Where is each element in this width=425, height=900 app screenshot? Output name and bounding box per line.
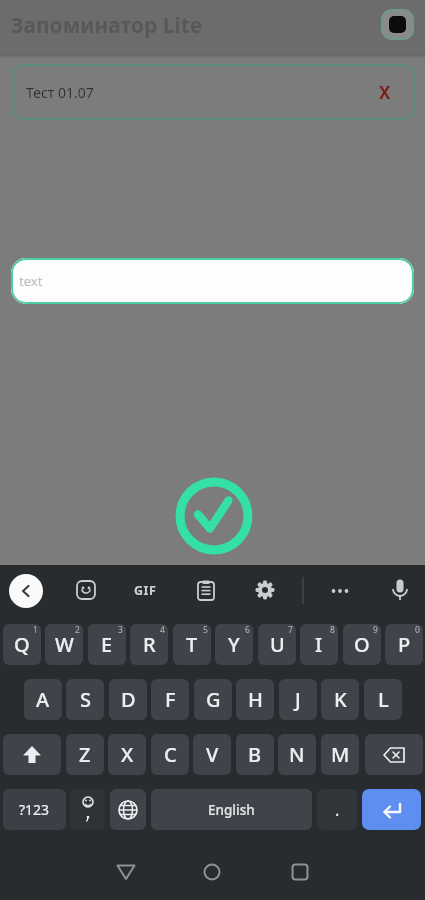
staticText: 2 — [75, 624, 80, 636]
button[interactable] — [3, 734, 61, 775]
button[interactable] — [381, 9, 414, 40]
staticText: L — [378, 686, 389, 713]
button[interactable]: C — [151, 734, 189, 775]
button[interactable] — [110, 858, 142, 886]
button[interactable] — [362, 789, 421, 830]
button[interactable]: English — [151, 789, 312, 830]
button[interactable]: Y — [215, 624, 253, 665]
staticText: 3 — [118, 624, 123, 636]
staticText: 5 — [203, 624, 208, 636]
staticText: N — [289, 741, 305, 768]
button[interactable] — [110, 789, 146, 830]
button[interactable]: ?123 — [3, 789, 66, 830]
button[interactable] — [251, 576, 279, 604]
staticText: A — [36, 686, 50, 713]
button[interactable]: P — [385, 624, 423, 665]
button[interactable]: A — [24, 679, 62, 720]
button[interactable]: . — [317, 789, 357, 830]
button[interactable]: Z — [66, 734, 104, 775]
staticText: R — [143, 631, 156, 658]
staticText: Тест 01.07 — [26, 83, 94, 102]
staticText: U — [270, 631, 285, 658]
staticText: 1 — [33, 624, 38, 636]
staticText: T — [186, 631, 198, 658]
button[interactable] — [386, 576, 414, 604]
staticText: O — [354, 631, 370, 658]
button[interactable]: U — [258, 624, 296, 665]
button[interactable]: S — [66, 679, 104, 720]
staticText: 9 — [373, 624, 378, 636]
button[interactable] — [365, 734, 423, 775]
button[interactable]: F — [151, 679, 189, 720]
button[interactable]: O — [343, 624, 381, 665]
button[interactable]: N — [278, 734, 316, 775]
button[interactable]: Тест 01.07 — [11, 64, 416, 120]
staticText: X — [121, 741, 134, 768]
staticText: 4 — [160, 624, 165, 636]
button[interactable]: J — [279, 679, 317, 720]
staticText: I — [315, 631, 323, 658]
button[interactable]: D — [109, 679, 147, 720]
button[interactable]: Q — [3, 624, 41, 665]
button[interactable]: text — [11, 258, 414, 304]
button[interactable] — [192, 576, 220, 604]
button[interactable]: B — [236, 734, 274, 775]
staticText: GIF — [134, 582, 157, 599]
staticText: J — [295, 686, 301, 713]
button[interactable] — [9, 574, 43, 608]
staticText: C — [164, 741, 177, 768]
button[interactable]: T — [173, 624, 211, 665]
staticText: 6 — [245, 624, 250, 636]
staticText: Z — [79, 741, 91, 768]
button[interactable] — [196, 858, 228, 886]
button[interactable]: M — [321, 734, 359, 775]
staticText: G — [206, 686, 221, 713]
staticText: Запоминатор Lite — [11, 11, 203, 40]
button[interactable]: R — [130, 624, 168, 665]
button[interactable] — [70, 789, 105, 830]
staticText: . — [335, 799, 340, 821]
staticText: S — [80, 686, 91, 713]
button[interactable]: I — [300, 624, 338, 665]
button[interactable] — [326, 579, 354, 603]
staticText: Q — [14, 631, 30, 658]
staticText: K — [334, 686, 347, 713]
staticText: 7 — [288, 624, 293, 636]
staticText: E — [101, 631, 113, 658]
staticText: Y — [228, 631, 240, 658]
staticText: English — [208, 801, 255, 819]
staticText: X — [379, 81, 391, 104]
button[interactable]: L — [364, 679, 402, 720]
button[interactable]: H — [236, 679, 274, 720]
staticText: W — [55, 631, 74, 658]
staticText: text — [19, 272, 43, 290]
button[interactable] — [284, 858, 316, 886]
staticText: 8 — [330, 624, 335, 636]
staticText: ?123 — [19, 800, 50, 819]
button[interactable]: E — [88, 624, 126, 665]
staticText: F — [165, 686, 176, 713]
staticText: H — [248, 686, 263, 713]
staticText: M — [331, 741, 350, 768]
button[interactable] — [175, 477, 253, 555]
staticText: P — [398, 631, 411, 658]
button[interactable]: X — [108, 734, 146, 775]
staticText: B — [248, 741, 262, 768]
button[interactable]: K — [321, 679, 359, 720]
staticText: 0 — [415, 624, 420, 636]
button[interactable]: W — [45, 624, 83, 665]
button[interactable] — [72, 576, 100, 604]
button[interactable]: V — [193, 734, 231, 775]
staticText: V — [206, 741, 219, 768]
button[interactable]: G — [194, 679, 232, 720]
staticText: D — [121, 686, 136, 713]
button[interactable]: GIF — [125, 578, 165, 602]
